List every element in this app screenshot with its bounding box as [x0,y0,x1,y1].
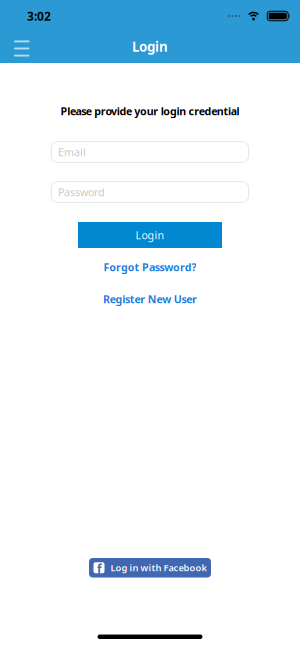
button[interactable]: Menu [0,31,37,61]
staticText: Password [51,185,98,199]
staticText: Forgot Password? [103,260,196,274]
staticText: Login [132,38,168,55]
staticText: Email [51,145,79,159]
staticText: Please provide your login credential [61,104,239,118]
button[interactable]: Forgot Password? [103,260,196,274]
textField[interactable]: Email [51,145,249,159]
button[interactable]: f [89,558,211,577]
button[interactable]: Login [78,222,222,248]
staticText: 3:02 [27,8,51,24]
staticText: Register New User [103,292,197,306]
staticText: Log in with Facebook [110,562,206,574]
secureTextField[interactable]: Password [51,185,249,199]
staticText: Login [135,228,164,242]
button[interactable]: Register New User [103,292,197,306]
staticText: Password [58,185,105,199]
staticText: f [97,561,102,577]
staticText: Email [58,145,86,159]
